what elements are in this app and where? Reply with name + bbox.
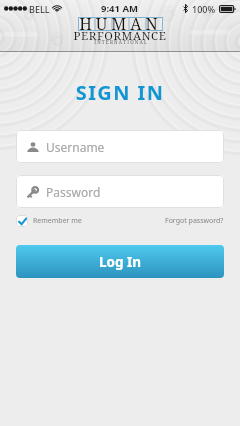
button[interactable]: Username — [16, 130, 224, 163]
button[interactable]: Forgot password? — [165, 216, 224, 226]
button[interactable]: Log In — [16, 245, 224, 278]
button[interactable]: Remember me — [16, 215, 82, 227]
staticText: Username — [46, 139, 105, 155]
staticText: Remember me — [33, 216, 82, 226]
staticText: I N T E R N A T I O N A L — [94, 39, 147, 45]
button[interactable]: Password — [16, 175, 224, 208]
staticText: 100% — [192, 3, 216, 15]
staticText: 9:41 AM — [101, 2, 138, 15]
staticText: Forgot password? — [165, 216, 224, 226]
staticText: Log In — [99, 253, 142, 271]
staticText: HUMAN — [79, 13, 162, 35]
staticText: SIGN IN — [0, 79, 240, 106]
staticText: PERFORMANCE — [73, 28, 167, 44]
staticText: Password — [46, 184, 101, 200]
staticText: BELL — [29, 3, 50, 15]
